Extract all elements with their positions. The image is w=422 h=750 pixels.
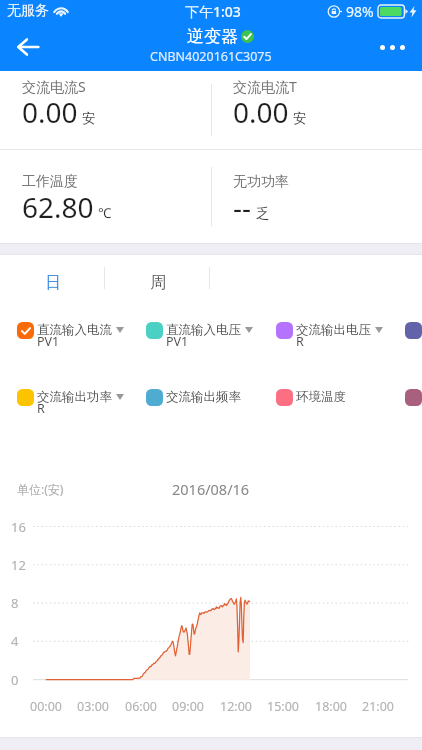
button[interactable]: 日 bbox=[0, 255, 105, 300]
staticText: 逆变器 bbox=[187, 26, 238, 47]
staticText: 无服务 bbox=[7, 2, 49, 20]
staticText: 21:00 bbox=[362, 698, 394, 715]
staticText: 安 bbox=[293, 110, 307, 127]
button[interactable]: 环境温度 bbox=[276, 389, 401, 406]
button[interactable] bbox=[405, 322, 422, 339]
button[interactable]: 交流输出功率 bbox=[17, 389, 142, 422]
staticText: 直流输入电流 bbox=[37, 322, 112, 338]
staticText: 0 bbox=[11, 671, 19, 689]
button[interactable]: 交流电流T bbox=[211, 71, 422, 149]
button[interactable]: More options bbox=[370, 22, 422, 71]
staticText: 无功功率 bbox=[233, 173, 289, 191]
staticText: 12 bbox=[11, 556, 26, 574]
button[interactable] bbox=[405, 389, 422, 406]
staticText: 15:00 bbox=[267, 698, 299, 715]
staticText: PV1 bbox=[166, 333, 189, 350]
button[interactable]: 无功功率 bbox=[211, 150, 422, 243]
staticText: 交流输出频率 bbox=[166, 389, 241, 405]
button[interactable]: 周 bbox=[105, 255, 210, 300]
staticText: 日 bbox=[45, 273, 61, 293]
staticText: 单位:(安) bbox=[17, 481, 64, 497]
button[interactable]: Back bbox=[0, 22, 56, 71]
staticText: 安 bbox=[82, 110, 96, 127]
button[interactable]: 交流电流S bbox=[0, 71, 211, 149]
staticText: R bbox=[296, 333, 304, 350]
staticText: 4 bbox=[11, 632, 19, 650]
staticText: ℃ bbox=[98, 204, 112, 222]
staticText: 09:00 bbox=[172, 698, 204, 715]
button[interactable]: 交流输出电压 bbox=[276, 322, 401, 355]
staticText: 8 bbox=[11, 594, 19, 612]
staticText: 03:00 bbox=[77, 698, 109, 715]
staticText: 00:00 bbox=[30, 698, 62, 715]
staticText: 工作温度 bbox=[22, 173, 78, 191]
staticText: 交流输出电压 bbox=[296, 322, 371, 338]
staticText: 周 bbox=[150, 273, 166, 293]
button[interactable]: 直流输入电流 bbox=[17, 322, 142, 355]
staticText: 18:00 bbox=[315, 698, 347, 715]
staticText: 下午1:03 bbox=[185, 2, 241, 21]
staticText: R bbox=[37, 400, 45, 417]
staticText: 交流电流S bbox=[22, 77, 86, 96]
staticText: 交流电流T bbox=[233, 77, 297, 96]
staticText: CNBN4020161C3075 bbox=[150, 48, 272, 65]
staticText: 乏 bbox=[256, 205, 270, 222]
staticText: 0.00 bbox=[233, 93, 289, 131]
staticText: 交流输出功率 bbox=[37, 389, 112, 405]
staticText: 2016/08/16 bbox=[172, 479, 250, 499]
button[interactable]: 交流输出频率 bbox=[146, 389, 271, 406]
staticText: 06:00 bbox=[125, 698, 157, 715]
button[interactable]: 直流输入电压 bbox=[146, 322, 271, 355]
staticText: 62.80 bbox=[22, 188, 94, 226]
staticText: 直流输入电压 bbox=[166, 322, 241, 338]
staticText: 0.00 bbox=[22, 93, 78, 131]
staticText: 16 bbox=[11, 518, 26, 536]
staticText: 环境温度 bbox=[296, 389, 346, 405]
staticText: PV1 bbox=[37, 333, 60, 350]
staticText: 12:00 bbox=[220, 698, 252, 715]
staticText: -- bbox=[233, 188, 252, 226]
button[interactable]: 工作温度 bbox=[0, 150, 211, 243]
staticText: 98% bbox=[346, 2, 374, 21]
